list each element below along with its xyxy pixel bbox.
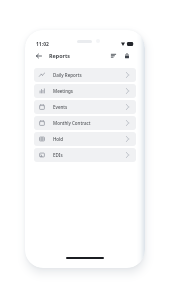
button[interactable]: Monthly Contract: [34, 116, 136, 130]
staticText: Monthly Contract: [53, 120, 91, 126]
button[interactable]: Events: [34, 100, 136, 114]
button[interactable]: Lock: [121, 50, 132, 61]
staticText: Reports: [49, 52, 70, 59]
button[interactable]: EDIs: [34, 148, 136, 162]
button[interactable]: Meetings: [34, 84, 136, 98]
button[interactable]: Filter: [108, 50, 119, 61]
button[interactable]: Hold: [34, 132, 136, 146]
staticText: Meetings: [53, 88, 74, 94]
button[interactable]: Back: [33, 50, 44, 61]
staticText: Events: [53, 104, 68, 110]
staticText: EDIs: [53, 152, 63, 158]
staticText: Hold: [53, 136, 64, 142]
staticText: 11:02: [36, 41, 49, 48]
staticText: Daily Reports: [53, 72, 82, 78]
button[interactable]: Daily Reports: [34, 68, 136, 82]
